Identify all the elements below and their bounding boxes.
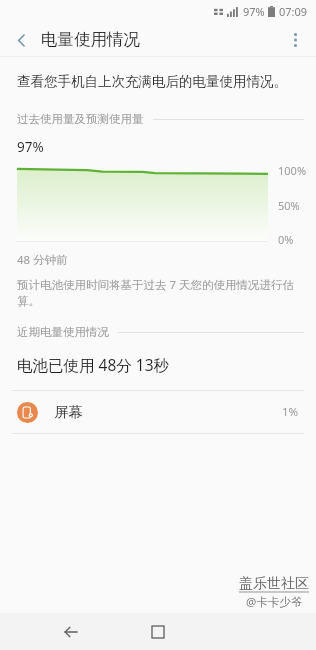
staticText: 预计电池使用时间将基于过去 7 天您的使用情况进行估算。 [17,277,306,308]
staticText: 48 分钟前 [17,252,68,268]
button[interactable]: Back [5,24,37,56]
staticText: 50% [278,198,300,213]
staticText: 0% [278,232,294,247]
staticText: 查看您手机自上次充满电后的电量使用情况。 [17,73,287,90]
staticText: 电量使用情况 [41,29,140,50]
button[interactable]: More options [279,24,311,56]
staticText: 盖乐世社区 [239,575,309,593]
staticText: 屏幕 [54,403,83,421]
staticText: @卡卡少爷 [246,594,303,610]
button[interactable]: Recents [141,615,175,649]
staticText: 07:09 [279,4,308,19]
staticText: 97% [17,138,44,156]
staticText: 1% [282,404,299,420]
staticText: 电池已使用 48分 13秒 [17,354,170,375]
staticText: 100% [278,163,307,178]
button[interactable]: 屏幕 [0,391,316,433]
staticText: 97% [243,4,265,19]
button[interactable]: Back [54,615,88,649]
staticText: 近期电量使用情况 [17,325,109,339]
staticText: 过去使用量及预测使用量 [17,112,144,126]
